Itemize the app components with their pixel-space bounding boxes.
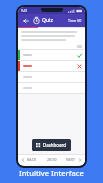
- staticText: Dashboard: [43, 142, 67, 148]
- staticText: Quiz: [42, 17, 53, 24]
- button[interactable]: Back: [21, 16, 30, 25]
- staticText: Time 60: [68, 18, 82, 23]
- button[interactable]: NEXT: [62, 155, 82, 164]
- staticText: BACK: [27, 157, 37, 162]
- staticText: NEXT: [66, 157, 76, 162]
- button[interactable]: BACK: [21, 155, 42, 164]
- button[interactable]: 20/30: [42, 155, 62, 164]
- button[interactable]: [18, 61, 85, 71]
- staticText: 20/30: [47, 157, 57, 162]
- button[interactable]: Dashboard: [32, 139, 71, 151]
- staticText: 9:41: [21, 9, 28, 13]
- button[interactable]: [18, 72, 85, 82]
- staticText: Intuitive Interface: [19, 168, 84, 178]
- button[interactable]: [18, 50, 85, 60]
- button[interactable]: [18, 83, 85, 93]
